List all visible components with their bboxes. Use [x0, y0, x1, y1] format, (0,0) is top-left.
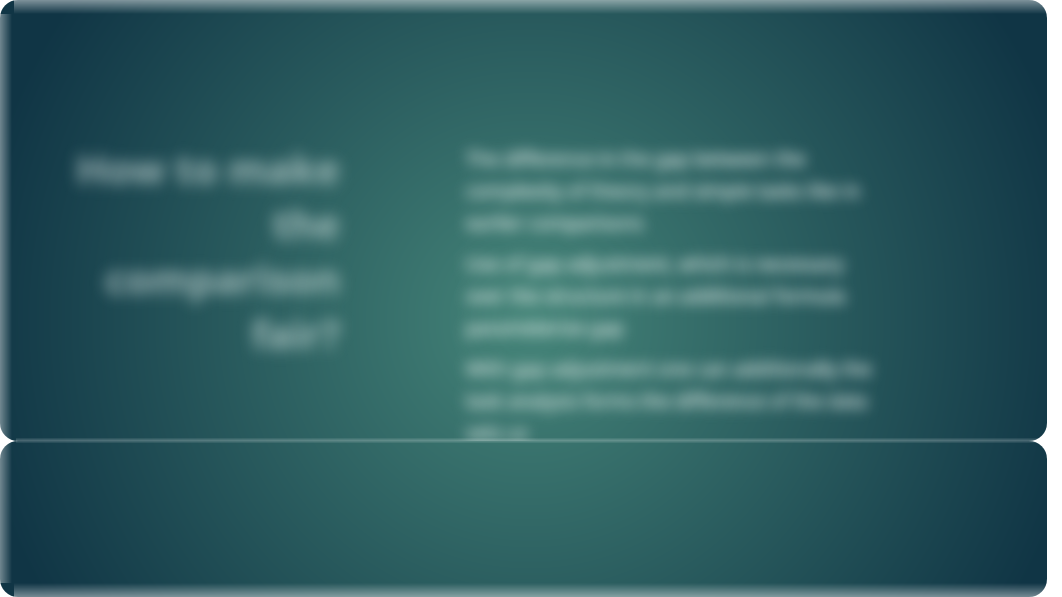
- staticText: With gap adjustment one can additionally…: [466, 356, 884, 441]
- button[interactable]: How to make the comparison fair?: [0, 0, 1047, 441]
- button[interactable]: [0, 441, 1047, 597]
- staticText: Use of gap adjustment, which is necessar…: [466, 251, 884, 341]
- staticText: How to make the comparison fair?: [54, 141, 340, 361]
- staticText: The difference in the gap between the co…: [466, 146, 884, 236]
